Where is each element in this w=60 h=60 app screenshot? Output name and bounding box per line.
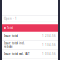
- staticText: Total: [7, 26, 13, 30]
- staticText: 1 234.56: [42, 34, 56, 38]
- button[interactable]: Issue total excl. VAT: [0, 50, 60, 59]
- staticText: Issue total incl. rebate: [4, 41, 25, 49]
- button[interactable]: Total: [0, 24, 60, 32]
- button[interactable]: Issue total incl. rebate: [0, 41, 60, 50]
- staticText: Open · 1: [4, 17, 17, 20]
- staticText: Issue total: [4, 34, 18, 38]
- button[interactable]: Issue total: [0, 32, 60, 41]
- staticText: 1 034.56: [42, 52, 56, 56]
- staticText: Issue total excl. VAT: [4, 52, 29, 56]
- staticText: 1 134.56: [42, 43, 56, 47]
